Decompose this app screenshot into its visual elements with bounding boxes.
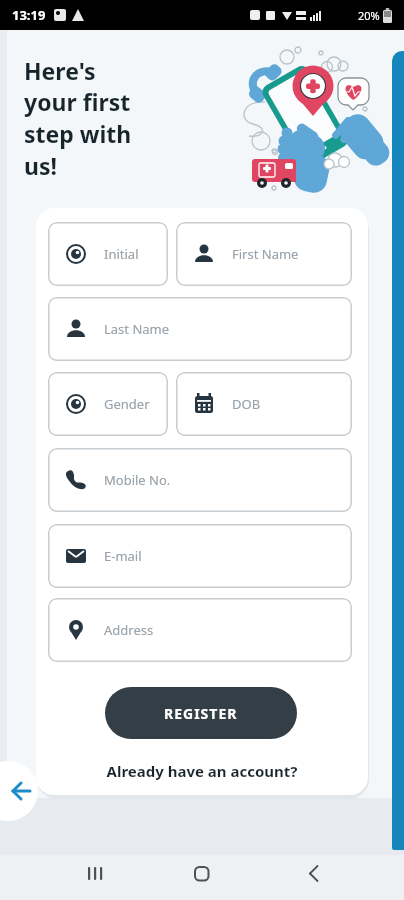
button[interactable]: Mobile No. xyxy=(48,448,352,512)
staticText: REGISTER xyxy=(164,704,238,723)
button[interactable]: REGISTER xyxy=(105,687,297,739)
button[interactable]: Initial xyxy=(48,222,168,286)
button[interactable]: Gender xyxy=(48,372,168,436)
staticText: Gender xyxy=(104,395,150,413)
button[interactable] xyxy=(78,855,114,892)
staticText: Last Name xyxy=(104,320,170,338)
button[interactable]: Address xyxy=(48,598,352,662)
staticText: 13:19 xyxy=(12,6,46,24)
staticText: 20% xyxy=(358,8,380,23)
staticText: DOB xyxy=(232,395,261,413)
staticText: Initial xyxy=(104,245,139,263)
button[interactable]: Last Name xyxy=(48,297,352,361)
staticText: Address xyxy=(104,621,154,639)
button[interactable]: E-mail xyxy=(48,524,352,588)
staticText: Here's your first step with us! xyxy=(24,55,132,182)
button[interactable] xyxy=(296,855,332,892)
staticText: E-mail xyxy=(104,547,142,565)
button[interactable] xyxy=(184,855,220,892)
button[interactable]: First Name xyxy=(176,222,352,286)
staticText: Already have an account? xyxy=(36,761,368,781)
button[interactable] xyxy=(0,761,38,821)
staticText: First Name xyxy=(232,245,299,263)
staticText: Mobile No. xyxy=(104,471,171,489)
button[interactable]: DOB xyxy=(176,372,352,436)
button[interactable]: Already have an account? xyxy=(36,761,368,781)
